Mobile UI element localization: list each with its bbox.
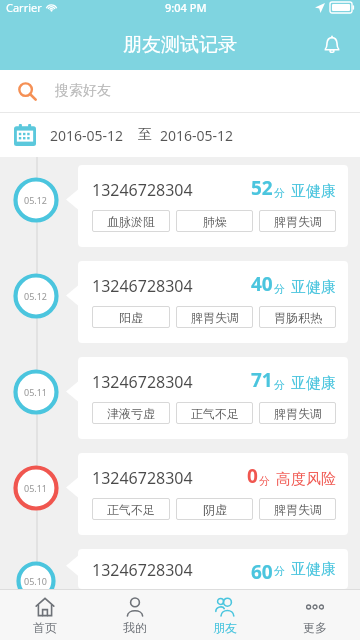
- staticText: 正气不足: [107, 502, 155, 517]
- staticText: 13246728304: [92, 467, 193, 489]
- button[interactable]: 阳虚: [92, 306, 170, 328]
- staticText: 脾胃失调: [274, 406, 322, 421]
- button[interactable]: 津液亏虚: [92, 402, 170, 424]
- button[interactable]: 13246728304: [66, 549, 348, 589]
- staticText: 分: [274, 186, 285, 200]
- staticText: 津液亏虚: [107, 406, 155, 421]
- staticText: 胃肠积热: [274, 310, 322, 325]
- staticText: 13246728304: [92, 179, 193, 201]
- staticText: 朋友测试记录: [123, 33, 237, 57]
- staticText: 脾胃失调: [274, 214, 322, 229]
- staticText: 9:04 PM: [165, 0, 207, 15]
- staticText: 朋友: [213, 620, 237, 635]
- button[interactable]: 朋友: [180, 591, 270, 639]
- staticText: Carrier: [6, 0, 42, 15]
- staticText: 05.11: [24, 482, 48, 494]
- staticText: 肺燥: [203, 214, 227, 229]
- button[interactable]: 脾胃失调: [259, 402, 336, 424]
- staticText: 52: [251, 175, 273, 201]
- staticText: 分: [274, 282, 285, 296]
- button[interactable]: 13246728304: [66, 261, 348, 343]
- button[interactable]: 05.11: [13, 465, 59, 511]
- staticText: 血脉淤阻: [107, 214, 155, 229]
- staticText: 60: [251, 559, 273, 579]
- staticText: 分: [274, 378, 285, 392]
- staticText: 0: [247, 463, 258, 489]
- staticText: 亚健康: [291, 374, 336, 393]
- button[interactable]: Notifications: [314, 27, 350, 63]
- button[interactable]: 首页: [0, 591, 90, 639]
- button[interactable]: 13246728304: [66, 357, 348, 439]
- button[interactable]: 脾胃失调: [176, 306, 253, 328]
- staticText: 高度风险: [276, 470, 336, 489]
- staticText: 71: [251, 367, 273, 393]
- button[interactable]: 肺燥: [176, 210, 253, 232]
- staticText: 05.11: [24, 386, 48, 398]
- button[interactable]: 正气不足: [92, 498, 170, 520]
- staticText: 13246728304: [92, 371, 193, 393]
- button[interactable]: 搜索好友: [0, 70, 360, 112]
- staticText: 我的: [123, 620, 147, 635]
- button[interactable]: 正气不足: [176, 402, 253, 424]
- staticText: 05.12: [24, 290, 48, 302]
- staticText: 亚健康: [291, 560, 336, 579]
- button[interactable]: 胃肠积热: [259, 306, 336, 328]
- button[interactable]: 05.12: [13, 273, 59, 319]
- staticText: 2016-05-12: [160, 126, 234, 145]
- button[interactable]: 更多: [270, 591, 360, 639]
- staticText: 亚健康: [291, 278, 336, 297]
- staticText: 至: [138, 126, 152, 144]
- staticText: 13246728304: [92, 559, 193, 579]
- button[interactable]: 脾胃失调: [259, 498, 336, 520]
- button[interactable]: 13246728304: [66, 165, 348, 247]
- staticText: 正气不足: [191, 406, 239, 421]
- button[interactable]: 血脉淤阻: [92, 210, 170, 232]
- button[interactable]: 13246728304: [66, 453, 348, 535]
- staticText: 脾胃失调: [274, 502, 322, 517]
- button[interactable]: 我的: [90, 591, 180, 639]
- button[interactable]: 05.11: [13, 369, 59, 415]
- staticText: 脾胃失调: [191, 310, 239, 325]
- button[interactable]: 脾胃失调: [259, 210, 336, 232]
- button[interactable]: 2016-05-12: [0, 113, 360, 157]
- button[interactable]: 05.10: [13, 561, 59, 601]
- staticText: 13246728304: [92, 275, 193, 297]
- staticText: 分: [259, 474, 270, 488]
- staticText: 2016-05-12: [50, 126, 124, 145]
- button[interactable]: 05.12: [13, 177, 59, 223]
- button[interactable]: 阴虚: [176, 498, 253, 520]
- staticText: 阳虚: [119, 310, 143, 325]
- staticText: 亚健康: [291, 182, 336, 201]
- staticText: 分: [274, 564, 285, 578]
- staticText: 首页: [33, 620, 57, 635]
- staticText: 05.12: [24, 194, 48, 206]
- staticText: 40: [251, 271, 273, 297]
- staticText: 05.10: [24, 575, 48, 587]
- staticText: 阴虚: [203, 502, 227, 517]
- staticText: 更多: [303, 620, 327, 635]
- staticText: 搜索好友: [55, 82, 111, 100]
